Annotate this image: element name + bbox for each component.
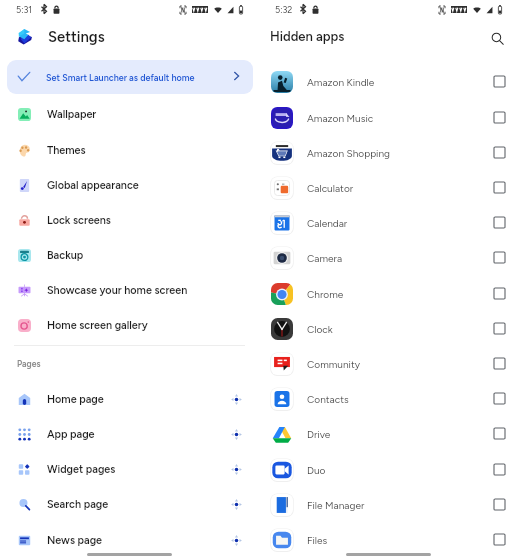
staticText: Drive (307, 428, 331, 440)
button[interactable]: Contacts (259, 381, 518, 416)
button[interactable]: Backup (0, 238, 259, 273)
button[interactable]: Amazon Music (259, 100, 518, 135)
button[interactable]: Lock screens (0, 203, 259, 238)
staticText: Showcase your home screen (47, 284, 188, 297)
staticText: Clock (307, 323, 333, 335)
staticText: Backup (47, 249, 84, 262)
button[interactable]: Search (486, 26, 509, 49)
staticText: Themes (47, 144, 86, 157)
button[interactable]: Search page (0, 487, 259, 522)
button[interactable]: Calculator (259, 170, 518, 205)
button[interactable]: Themes (0, 133, 259, 168)
staticText: Contacts (307, 393, 349, 405)
button[interactable]: Home screen gallery (0, 308, 259, 343)
button[interactable]: Calendar (259, 205, 518, 240)
staticText: Home screen gallery (47, 319, 148, 332)
staticText: Amazon Music (307, 112, 374, 124)
button[interactable]: App page (0, 417, 259, 452)
button[interactable]: Drive (259, 416, 518, 451)
staticText: Set Smart Launcher as default home (46, 72, 195, 83)
staticText: Calendar (307, 217, 348, 229)
button[interactable]: Set Smart Launcher as default home (7, 60, 253, 94)
button[interactable]: Duo (259, 452, 518, 487)
staticText: Calculator (307, 182, 354, 194)
staticText: Global appearance (47, 179, 139, 192)
staticText: 5:32 (275, 4, 293, 15)
staticText: 5:31 (16, 4, 33, 15)
staticText: Amazon Shopping (307, 147, 391, 159)
staticText: Chrome (307, 288, 344, 300)
button[interactable]: Files (259, 522, 518, 557)
staticText: Search page (47, 498, 109, 511)
staticText: Home page (47, 393, 104, 406)
staticText: Amazon Kindle (307, 76, 375, 88)
staticText: File Manager (307, 499, 365, 511)
button[interactable]: Camera (259, 240, 518, 275)
button[interactable]: Widget pages (0, 452, 259, 487)
button[interactable]: Amazon Kindle (259, 64, 518, 99)
staticText: Wallpaper (47, 108, 97, 121)
staticText: Widget pages (47, 463, 116, 476)
staticText: App page (47, 428, 95, 441)
staticText: Hidden apps (270, 29, 345, 45)
staticText: Settings (48, 28, 105, 46)
staticText: Community (307, 358, 361, 370)
button[interactable]: Showcase your home screen (0, 273, 259, 308)
button[interactable]: Home page (0, 382, 259, 417)
button[interactable]: Wallpaper (0, 97, 259, 132)
staticText: Camera (307, 252, 343, 264)
staticText: Files (307, 534, 328, 546)
staticText: News page (47, 534, 103, 547)
staticText: Pages (17, 359, 41, 369)
button[interactable]: File Manager (259, 487, 518, 522)
button[interactable]: News page (0, 523, 259, 558)
button[interactable]: Chrome (259, 276, 518, 311)
button[interactable]: Clock (259, 311, 518, 346)
staticText: Duo (307, 464, 326, 476)
staticText: Lock screens (47, 214, 111, 227)
button[interactable]: Amazon Shopping (259, 135, 518, 170)
button[interactable]: Global appearance (0, 168, 259, 203)
button[interactable]: Community (259, 346, 518, 381)
